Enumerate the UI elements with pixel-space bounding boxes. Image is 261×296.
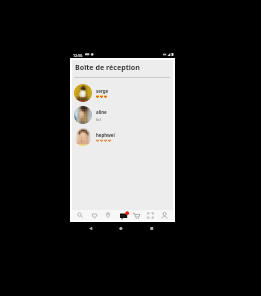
- staticText: Boîte de réception: [75, 62, 140, 72]
- staticText: serge: [96, 88, 109, 94]
- button[interactable]: aline: [70, 104, 175, 126]
- staticText: aline: [96, 109, 107, 115]
- staticText: hephwei: [96, 132, 115, 138]
- button[interactable]: serge: [70, 82, 175, 104]
- button[interactable]: Profile: [157, 210, 171, 220]
- button[interactable]: Places: [101, 210, 115, 220]
- button[interactable]: Favorites: [87, 210, 101, 220]
- button[interactable]: Scan: [143, 210, 157, 220]
- staticText: lol: [96, 116, 101, 122]
- button[interactable]: Cart: [129, 210, 143, 220]
- staticText: 12:55: [73, 53, 83, 58]
- button[interactable]: hephwei: [70, 126, 175, 148]
- button[interactable]: Messages: [115, 210, 129, 220]
- button[interactable]: Search: [72, 210, 87, 220]
